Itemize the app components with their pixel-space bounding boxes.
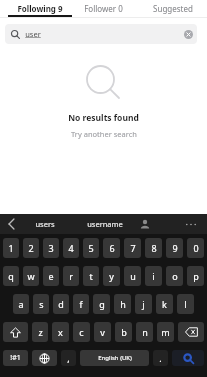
button[interactable]: 0 bbox=[187, 238, 204, 258]
button[interactable]: 9 bbox=[166, 238, 183, 258]
staticText: No results found bbox=[68, 112, 139, 124]
staticText: d bbox=[58, 298, 64, 310]
button[interactable] bbox=[140, 219, 150, 229]
button[interactable]: e bbox=[43, 266, 59, 286]
button[interactable]: u bbox=[124, 266, 141, 286]
button[interactable]: i bbox=[145, 266, 162, 286]
staticText: a bbox=[18, 298, 24, 310]
button[interactable]: 4 bbox=[63, 238, 79, 258]
staticText: , bbox=[67, 352, 70, 364]
staticText: p bbox=[193, 270, 199, 282]
staticText: c bbox=[79, 326, 84, 338]
staticText: user bbox=[25, 29, 41, 39]
staticText: m bbox=[161, 326, 170, 338]
staticText: f bbox=[79, 298, 83, 310]
button[interactable]: l bbox=[177, 294, 194, 314]
staticText: s bbox=[39, 298, 44, 310]
staticText: g bbox=[99, 298, 105, 310]
staticText: !#1 bbox=[10, 353, 21, 363]
staticText: h bbox=[120, 298, 126, 310]
button[interactable]: f bbox=[73, 294, 89, 314]
button[interactable]: p bbox=[187, 266, 204, 286]
button[interactable]: g bbox=[93, 294, 110, 314]
staticText: z bbox=[38, 326, 43, 338]
button[interactable]: b bbox=[115, 322, 132, 342]
button[interactable]: Following 9 bbox=[0, 0, 69, 17]
button[interactable]: 7 bbox=[124, 238, 141, 258]
staticText: l bbox=[184, 298, 187, 310]
staticText: 8 bbox=[151, 242, 157, 254]
button[interactable]: r bbox=[63, 266, 79, 286]
button[interactable]: users bbox=[35, 219, 55, 229]
button[interactable]: . bbox=[153, 350, 168, 366]
staticText: 7 bbox=[130, 242, 136, 254]
button[interactable] bbox=[3, 322, 28, 342]
staticText: u bbox=[130, 270, 136, 282]
button[interactable] bbox=[185, 219, 197, 229]
button[interactable]: j bbox=[135, 294, 152, 314]
staticText: k bbox=[162, 298, 167, 310]
button[interactable]: m bbox=[157, 322, 174, 342]
button[interactable]: 1 bbox=[3, 238, 19, 258]
button[interactable]: 2 bbox=[23, 238, 39, 258]
button[interactable]: a bbox=[13, 294, 29, 314]
button[interactable]: h bbox=[114, 294, 131, 314]
staticText: 4 bbox=[68, 242, 74, 254]
button[interactable]: 5 bbox=[83, 238, 99, 258]
staticText: users bbox=[35, 219, 55, 229]
staticText: Try another search bbox=[71, 129, 137, 139]
button[interactable]: Suggested bbox=[138, 0, 207, 17]
staticText: y bbox=[109, 270, 114, 282]
button[interactable]: 8 bbox=[145, 238, 162, 258]
button[interactable]: s bbox=[33, 294, 49, 314]
button[interactable]: x bbox=[52, 322, 69, 342]
button[interactable]: z bbox=[32, 322, 48, 342]
button[interactable]: username bbox=[87, 219, 123, 229]
staticText: 9 bbox=[172, 242, 178, 254]
button[interactable]: English (UK) bbox=[80, 350, 149, 366]
staticText: q bbox=[8, 270, 14, 282]
staticText: . bbox=[159, 352, 162, 364]
staticText: j bbox=[142, 298, 145, 310]
button[interactable]: 3 bbox=[43, 238, 59, 258]
staticText: 5 bbox=[88, 242, 94, 254]
button[interactable] bbox=[32, 350, 57, 366]
staticText: v bbox=[100, 326, 105, 338]
button[interactable]: user bbox=[5, 24, 197, 44]
staticText: 0 bbox=[193, 242, 199, 254]
button[interactable]: !#1 bbox=[3, 350, 28, 366]
staticText: Following 9 bbox=[17, 3, 63, 14]
button[interactable]: , bbox=[61, 350, 76, 366]
staticText: b bbox=[121, 326, 127, 338]
button[interactable]: n bbox=[136, 322, 153, 342]
staticText: x bbox=[58, 326, 63, 338]
staticText: e bbox=[48, 270, 54, 282]
button[interactable]: d bbox=[53, 294, 69, 314]
staticText: 1 bbox=[8, 242, 14, 254]
button[interactable]: 6 bbox=[103, 238, 120, 258]
button[interactable] bbox=[184, 30, 193, 39]
staticText: 2 bbox=[28, 242, 34, 254]
button[interactable]: c bbox=[73, 322, 90, 342]
button[interactable]: y bbox=[103, 266, 120, 286]
staticText: 3 bbox=[48, 242, 54, 254]
staticText: English (UK) bbox=[98, 354, 132, 362]
staticText: w bbox=[27, 270, 35, 282]
staticText: i bbox=[152, 270, 155, 282]
button[interactable]: o bbox=[166, 266, 183, 286]
button[interactable] bbox=[8, 219, 15, 229]
staticText: t bbox=[89, 270, 93, 282]
staticText: o bbox=[172, 270, 178, 282]
button[interactable]: q bbox=[3, 266, 19, 286]
button[interactable]: k bbox=[156, 294, 173, 314]
staticText: username bbox=[87, 219, 123, 229]
button[interactable]: w bbox=[23, 266, 39, 286]
button[interactable] bbox=[178, 322, 204, 342]
button[interactable]: v bbox=[94, 322, 111, 342]
staticText: Follower 0 bbox=[84, 3, 123, 14]
button[interactable]: t bbox=[83, 266, 99, 286]
button[interactable]: Follower 0 bbox=[69, 0, 138, 17]
button[interactable] bbox=[172, 350, 204, 366]
staticText: r bbox=[69, 270, 73, 282]
staticText: Suggested bbox=[153, 3, 193, 14]
